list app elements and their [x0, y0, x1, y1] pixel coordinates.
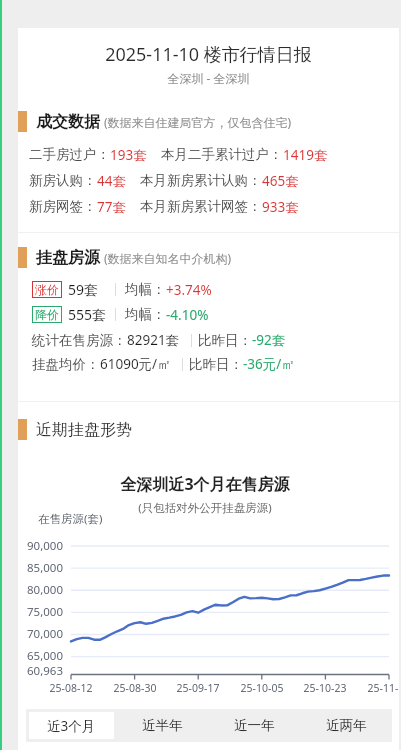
staticText: 在售房源(套)	[38, 511, 103, 527]
staticText: 25-08-12	[41, 681, 101, 695]
staticText: 降价	[35, 307, 59, 322]
staticText: 60,963	[18, 663, 63, 679]
staticText: 555套	[68, 305, 107, 324]
staticText: 65,000	[18, 648, 63, 664]
staticText: 2025-11-10 楼市行情日报	[18, 42, 399, 67]
staticText: 59套	[68, 280, 99, 299]
staticText: 近3个月	[47, 717, 96, 735]
staticText: 1419套	[283, 146, 328, 164]
staticText: -4.10%	[166, 306, 209, 324]
staticText: 近两年	[326, 717, 367, 734]
staticText: 本月二手累计过户：	[161, 146, 283, 163]
staticText: (只包括对外公开挂盘房源)	[18, 500, 392, 516]
staticText: 25-08-30	[105, 681, 165, 695]
staticText: 二手房过户：	[29, 146, 110, 163]
staticText: 比昨日：	[198, 332, 252, 349]
staticText: 80,000	[18, 582, 63, 598]
staticText: 25-11-10	[359, 681, 399, 695]
staticText: 25-10-05	[232, 681, 292, 695]
staticText: 均幅：	[125, 281, 166, 298]
button[interactable]: 近两年	[303, 712, 389, 739]
staticText: 近期挂盘形势	[36, 420, 132, 440]
staticText: 85,000	[18, 560, 63, 576]
staticText: 193套	[110, 146, 147, 164]
staticText: 61090元/㎡	[100, 355, 171, 373]
staticText: 成交数据	[36, 112, 100, 132]
button[interactable]: 近3个月	[29, 712, 114, 739]
staticText: 70,000	[18, 626, 63, 642]
staticText: 涨价	[35, 282, 59, 297]
staticText: 挂盘均价：	[32, 356, 100, 373]
staticText: 比昨日：	[189, 356, 243, 373]
staticText: 挂盘房源	[36, 248, 100, 268]
staticText: 均幅：	[125, 306, 166, 323]
staticText: 本月新房累计网签：	[140, 198, 262, 215]
staticText: (数据来自知名中介机构)	[104, 250, 232, 266]
staticText: 465套	[262, 172, 299, 190]
staticText: 933套	[262, 198, 299, 216]
staticText: -36元/㎡	[243, 355, 295, 373]
staticText: 全深圳 - 全深圳	[18, 70, 399, 86]
staticText: 77套	[97, 198, 126, 216]
button[interactable]: 近半年	[120, 712, 205, 739]
staticText: 近半年	[142, 717, 183, 734]
button[interactable]: 近一年	[211, 712, 297, 739]
staticText: 本月新房累计认购：	[140, 172, 262, 189]
staticText: 统计在售房源：	[32, 332, 127, 349]
staticText: 全深圳近3个月在售房源	[18, 473, 392, 495]
staticText: 44套	[97, 172, 126, 190]
staticText: 25-09-17	[168, 681, 228, 695]
staticText: +3.74%	[166, 281, 212, 299]
staticText: 90,000	[18, 538, 63, 554]
staticText: 82921套	[127, 331, 180, 349]
staticText: 25-10-23	[295, 681, 355, 695]
staticText: (数据来自住建局官方，仅包含住宅)	[104, 114, 292, 130]
staticText: 75,000	[18, 604, 63, 620]
staticText: 新房认购：	[29, 172, 97, 189]
staticText: -92套	[252, 331, 286, 349]
staticText: 近一年	[234, 717, 275, 734]
staticText: 新房网签：	[29, 198, 97, 215]
